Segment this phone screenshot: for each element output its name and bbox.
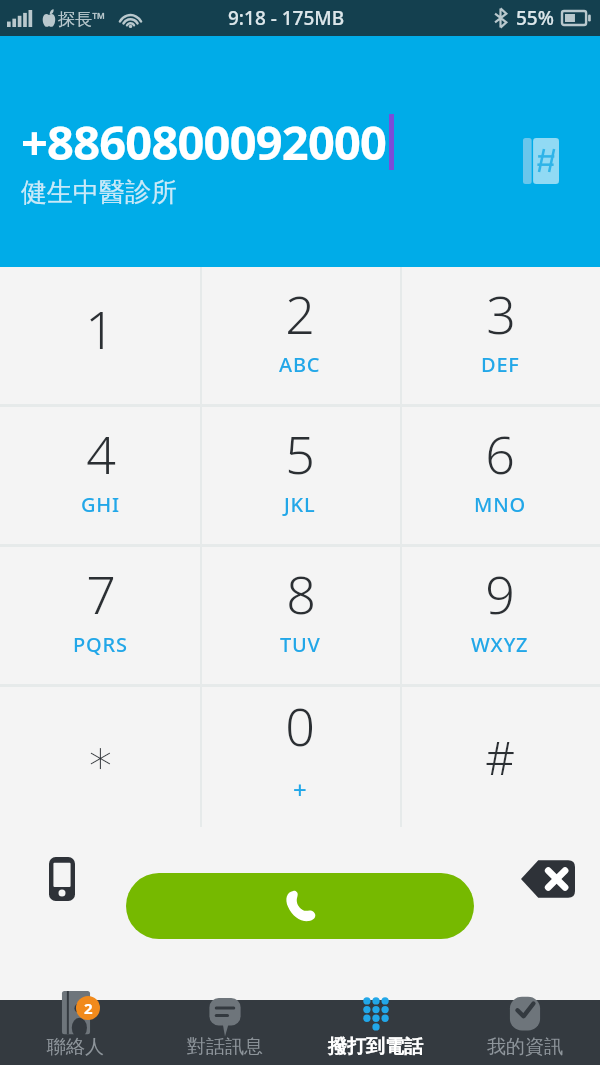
staticText: 8 [286, 558, 316, 629]
staticText: DEF [481, 351, 520, 378]
staticText: 9:18 - 175MB [228, 5, 345, 31]
staticText: 4 [86, 418, 116, 489]
button[interactable]: Call [126, 873, 474, 939]
staticText: 健生中醫診所 [21, 176, 177, 209]
staticText: 聯絡人 [47, 1035, 104, 1059]
staticText: JKL [284, 491, 316, 518]
button[interactable]: Call with mobile [22, 843, 102, 915]
button[interactable]: 8 [200, 547, 400, 687]
staticText: 我的資訊 [487, 1035, 563, 1059]
staticText: 9 [485, 558, 515, 629]
staticText: 2 [84, 998, 93, 1018]
staticText: 0 [285, 690, 315, 761]
staticText: GHI [81, 491, 120, 518]
button[interactable]: 0 [200, 687, 400, 827]
staticText: 1 [85, 293, 115, 364]
button[interactable]: 2 [0, 1000, 150, 1065]
button[interactable]: 1 [0, 267, 200, 407]
button[interactable]: 6 [400, 407, 600, 547]
button[interactable]: ∗ [0, 687, 200, 827]
staticText: 對話訊息 [187, 1035, 263, 1059]
button[interactable]: 7 [0, 547, 200, 687]
staticText: PQRS [73, 631, 128, 658]
staticText: 5 [285, 418, 315, 489]
staticText: ∗ [86, 730, 115, 784]
staticText: 撥打到電話 [328, 1035, 423, 1059]
button[interactable]: 撥打到電話 [300, 1000, 450, 1065]
button[interactable]: Backspace [508, 843, 588, 915]
staticText: 探長™ [58, 7, 106, 30]
staticText: MNO [474, 491, 526, 518]
button[interactable]: 3 [400, 267, 600, 407]
staticText: 6 [485, 418, 515, 489]
button[interactable]: 9 [400, 547, 600, 687]
staticText: ABC [279, 351, 321, 378]
staticText: TUV [280, 631, 321, 658]
staticText: + [293, 773, 308, 806]
staticText: # [485, 726, 515, 789]
button[interactable]: 5 [200, 407, 400, 547]
button[interactable]: 我的資訊 [450, 1000, 600, 1065]
staticText: +8860800092000 [21, 110, 387, 174]
button[interactable]: # [400, 687, 600, 827]
button[interactable]: Contacts directory [515, 131, 567, 191]
staticText: 55% [516, 5, 554, 31]
staticText: WXYZ [471, 631, 529, 658]
button[interactable]: 4 [0, 407, 200, 547]
button[interactable]: 對話訊息 [150, 1000, 300, 1065]
staticText: 7 [86, 558, 116, 629]
staticText: 2 [285, 278, 315, 349]
staticText: 3 [486, 278, 516, 349]
button[interactable]: 2 [200, 267, 400, 407]
